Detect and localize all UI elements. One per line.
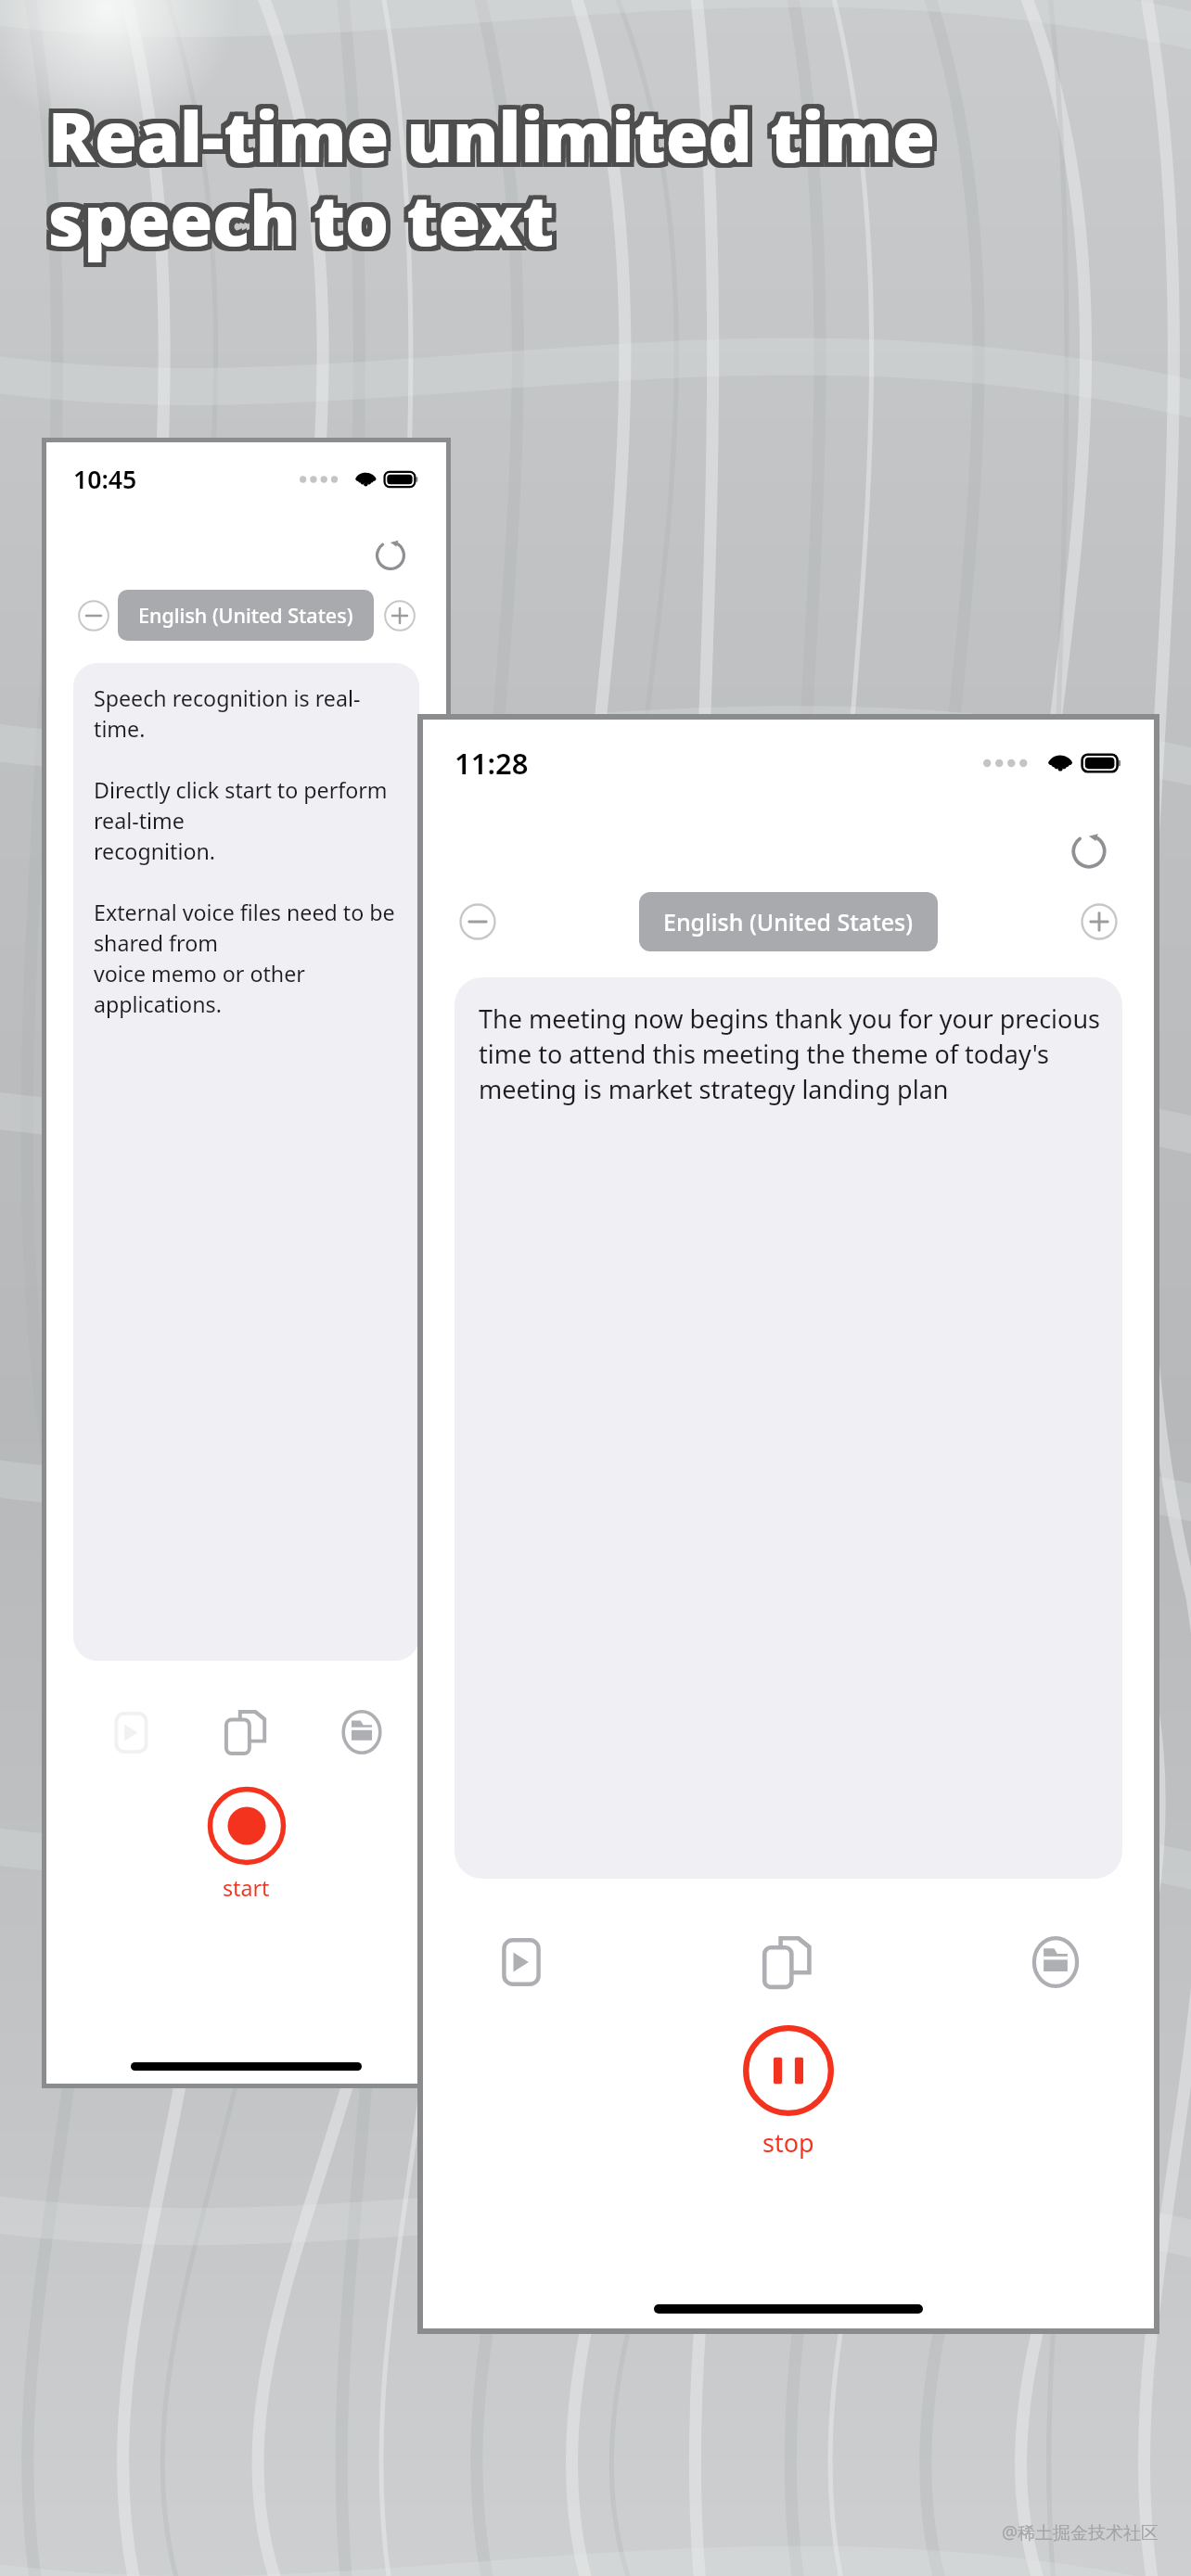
button[interactable]: Refresh: [365, 529, 416, 580]
button[interactable]: Start: [46, 1785, 446, 1903]
staticText: Real-time unlimited time speech to text: [48, 84, 936, 261]
button[interactable]: Decrease: [69, 591, 118, 640]
staticText: Speech recognition is real-time. Directl…: [94, 683, 403, 1018]
button[interactable]: Decrease: [449, 893, 506, 950]
button[interactable]: Files: [1017, 1923, 1095, 2001]
staticText: English (United States): [663, 906, 914, 937]
staticText: start: [223, 1873, 270, 1903]
staticText: Real-time unlimited time speech to text: [44, 94, 931, 270]
button[interactable]: The meeting now begins thank you for you…: [455, 977, 1122, 1879]
button[interactable]: Copy: [213, 1699, 280, 1766]
staticText: Real-time unlimited time speech to text: [53, 89, 941, 265]
staticText: Real-time unlimited time speech to text: [48, 89, 936, 265]
button[interactable]: Stop: [423, 2023, 1154, 2160]
button[interactable]: Increase: [1070, 893, 1128, 950]
button[interactable]: English (United States): [639, 892, 938, 951]
button[interactable]: Files: [328, 1699, 395, 1766]
staticText: stop: [762, 2125, 814, 2160]
staticText: The meeting now begins thank you for you…: [479, 1001, 1104, 1106]
staticText: @稀土掘金技术社区: [1002, 2520, 1159, 2544]
button[interactable]: Play: [97, 1699, 164, 1766]
staticText: Real-time unlimited time speech to text: [44, 89, 931, 265]
button[interactable]: English (United States): [118, 590, 374, 641]
button[interactable]: Refresh: [1059, 822, 1119, 881]
staticText: English (United States): [138, 602, 353, 629]
staticText: Real-time unlimited time speech to text: [53, 84, 941, 261]
button[interactable]: Speech recognition is real-time. Directl…: [73, 663, 419, 1661]
staticText: 10:45: [73, 463, 137, 496]
staticText: Real-time unlimited time speech to text: [48, 94, 936, 270]
button[interactable]: Copy: [749, 1923, 827, 2001]
staticText: Real-time unlimited time speech to text: [44, 84, 931, 261]
staticText: Real-time unlimited time speech to text: [53, 94, 941, 270]
button[interactable]: Increase: [375, 591, 424, 640]
staticText: 11:28: [455, 744, 529, 783]
button[interactable]: Play: [482, 1923, 560, 2001]
